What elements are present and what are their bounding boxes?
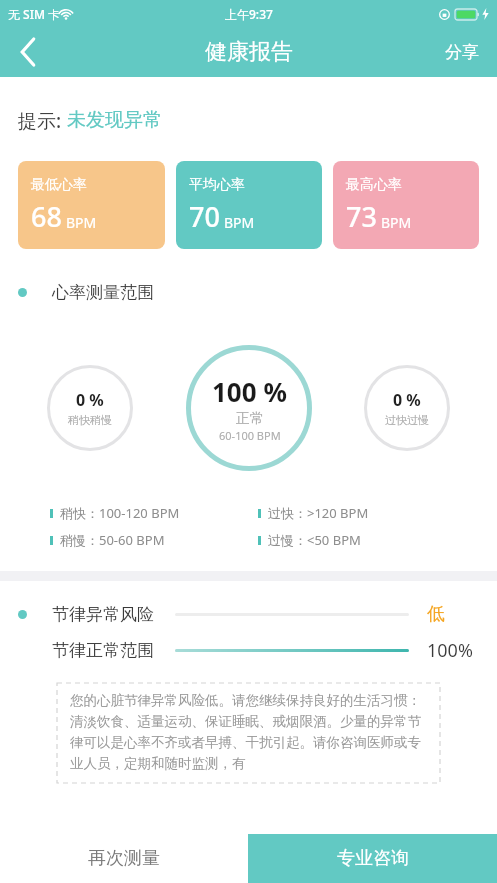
staticText: 您的心脏节律异常风险低。请您继续保持良好的生活习惯：清淡饮食、适量运动、保证睡眠… xyxy=(70,692,430,772)
staticText: 0 % xyxy=(393,389,421,411)
staticText: 100 % xyxy=(212,374,287,409)
staticText: 再次测量 xyxy=(88,847,160,870)
button[interactable]: 专业咨询 xyxy=(248,834,497,883)
staticText: 100% xyxy=(427,638,479,663)
staticText: 专业咨询 xyxy=(337,847,409,870)
staticText: 68 xyxy=(31,198,62,235)
button[interactable]: 最低心率 xyxy=(18,161,165,249)
staticText: 无 SIM 卡 xyxy=(8,6,61,22)
staticText: 平均心率 xyxy=(189,176,245,194)
staticText: BPM xyxy=(381,213,412,232)
button[interactable]: 最高心率 xyxy=(333,161,479,249)
staticText: 0 % xyxy=(76,389,104,411)
staticText: 心率测量范围 xyxy=(52,282,154,303)
button[interactable]: 分享 xyxy=(427,27,497,77)
staticText: 过慢：<50 BPM xyxy=(268,531,361,549)
staticText: 最低心率 xyxy=(31,176,87,194)
staticText: 节律异常风险 xyxy=(52,604,154,625)
staticText: 未发现异常 xyxy=(67,108,162,132)
staticText: 上午9:37 xyxy=(225,6,273,22)
staticText: 分享 xyxy=(445,42,479,63)
button[interactable]: Back xyxy=(0,27,56,77)
staticText: 60-100 BPM xyxy=(219,428,281,443)
staticText: 提示: xyxy=(18,108,67,134)
staticText: 73 xyxy=(346,198,377,235)
button[interactable]: 再次测量 xyxy=(0,834,248,883)
staticText: 70 xyxy=(189,198,220,235)
button[interactable]: 平均心率 xyxy=(176,161,322,249)
staticText: 稍慢：50-60 BPM xyxy=(60,531,165,549)
staticText: 稍快稍慢 xyxy=(68,413,112,427)
staticText: 过快过慢 xyxy=(385,413,429,427)
staticText: 低 xyxy=(427,603,479,626)
staticText: BPM xyxy=(66,213,97,232)
staticText: 稍快：100-120 BPM xyxy=(60,504,180,522)
staticText: 过快：>120 BPM xyxy=(268,504,369,522)
staticText: 最高心率 xyxy=(346,176,402,194)
staticText: 健康报告 xyxy=(205,38,293,66)
staticText: 正常 xyxy=(236,410,264,428)
staticText: BPM xyxy=(224,213,255,232)
staticText: 节律正常范围 xyxy=(52,640,154,661)
